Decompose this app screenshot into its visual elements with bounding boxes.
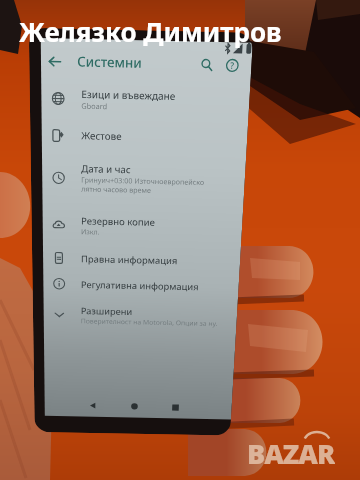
staticText: Разширени: [81, 305, 133, 318]
staticText: Дата и час: [81, 162, 132, 176]
staticText: Поверителност на Motorola, Опции за ну.: [81, 317, 229, 329]
button[interactable]: Back: [81, 394, 105, 417]
button[interactable]: Правна информация: [43, 245, 241, 274]
button[interactable]: Резервно копие: [42, 204, 243, 249]
button[interactable]: Home: [122, 395, 147, 418]
staticText: ?: [230, 59, 235, 71]
staticText: Системни: [77, 52, 142, 72]
staticText: Желязко Димитров: [19, 14, 282, 49]
button[interactable]: Help: [219, 52, 246, 78]
button[interactable]: Регулативна информация: [43, 270, 239, 300]
staticText: Регулативна информация: [81, 278, 199, 293]
button[interactable]: Search: [194, 51, 220, 77]
button[interactable]: Разширени: [43, 297, 238, 335]
staticText: Резервно копие: [81, 214, 156, 229]
button[interactable]: Back: [41, 48, 68, 74]
staticText: Правна информация: [81, 253, 178, 267]
staticText: Гринуич+03:00 Източноевропейско лятно ча…: [81, 175, 237, 197]
button[interactable]: Дата и час: [42, 150, 246, 208]
button[interactable]: Recent apps: [162, 396, 188, 419]
button[interactable]: Езици и въвеждане: [41, 77, 251, 124]
staticText: Gboard: [81, 101, 241, 115]
staticText: BAZAR: [247, 435, 335, 465]
button[interactable]: Жестове: [42, 119, 248, 154]
staticText: Езици и въвеждане: [81, 87, 176, 103]
staticText: Изкл.: [81, 227, 234, 240]
staticText: Жестове: [81, 129, 122, 143]
